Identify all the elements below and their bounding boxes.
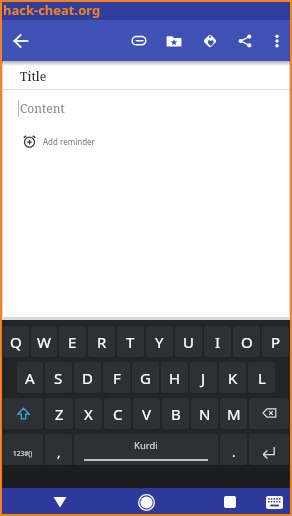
staticText: hack-cheat.org [3,1,101,19]
button[interactable]: S [45,362,72,393]
button[interactable] [214,488,246,516]
button[interactable] [156,20,192,61]
staticText: A [25,368,35,388]
button[interactable]: R [88,326,115,357]
button[interactable]: N [191,398,218,429]
staticText: U [183,332,194,352]
button[interactable] [192,20,228,61]
staticText: Kurdi [134,439,158,452]
staticText: I [215,332,221,352]
button[interactable] [0,20,41,61]
button[interactable]: W [31,326,57,357]
button[interactable]: O [233,326,260,357]
staticText: K [228,368,238,388]
button[interactable]: Add reminder [23,135,95,148]
button[interactable]: P [262,326,289,357]
button[interactable] [259,490,289,514]
staticText: S [54,368,63,388]
button[interactable] [44,488,76,516]
button[interactable]: V [133,398,160,429]
staticText: E [68,332,77,352]
staticText: R [97,332,107,352]
staticText: T [126,332,135,352]
button[interactable] [249,398,289,429]
button[interactable]: X [75,398,102,429]
button[interactable]: I [204,326,231,357]
button[interactable]: G [132,362,159,393]
staticText: L [258,368,266,388]
button[interactable] [122,20,156,61]
button[interactable]: M [220,398,247,429]
staticText: . [232,443,236,461]
button[interactable]: . [220,434,247,465]
button[interactable]: H [161,362,188,393]
button[interactable]: F [103,362,130,393]
staticText: 123#() [13,449,33,458]
button[interactable]: T [117,326,144,357]
button[interactable]: Q [3,326,29,357]
button[interactable]: Kurdi [74,434,218,465]
staticText: C [113,404,123,424]
button[interactable] [262,20,292,61]
button[interactable]: , [45,434,72,465]
staticText: M [227,404,241,424]
staticText: D [82,368,93,388]
staticText: O [241,332,253,352]
staticText: J [201,368,206,388]
button[interactable] [228,20,262,61]
button[interactable]: Y [146,326,173,357]
staticText: Title [20,68,47,84]
staticText: F [113,368,121,388]
staticText: H [169,368,181,388]
button[interactable]: K [219,362,246,393]
staticText: V [142,404,152,424]
button[interactable]: D [74,362,101,393]
staticText: Y [155,332,164,352]
button[interactable]: A [17,362,43,393]
button[interactable]: U [175,326,202,357]
button[interactable] [3,398,43,429]
button[interactable]: C [104,398,131,429]
staticText: Z [55,404,64,424]
staticText: , [57,443,61,461]
button[interactable]: J [190,362,217,393]
staticText: Content [20,100,65,116]
staticText: B [171,404,181,424]
staticText: X [84,404,93,424]
staticText: Add reminder [43,136,95,147]
button[interactable]: L [248,362,275,393]
staticText: P [271,332,281,352]
button[interactable]: Z [45,398,73,429]
staticText: G [140,368,151,388]
staticText: Q [10,332,22,352]
button[interactable]: E [59,326,86,357]
staticText: W [37,332,51,352]
button[interactable] [249,434,289,465]
button[interactable]: B [162,398,189,429]
staticText: N [199,404,211,424]
button[interactable]: 123#() [3,434,43,465]
button[interactable] [130,488,162,516]
